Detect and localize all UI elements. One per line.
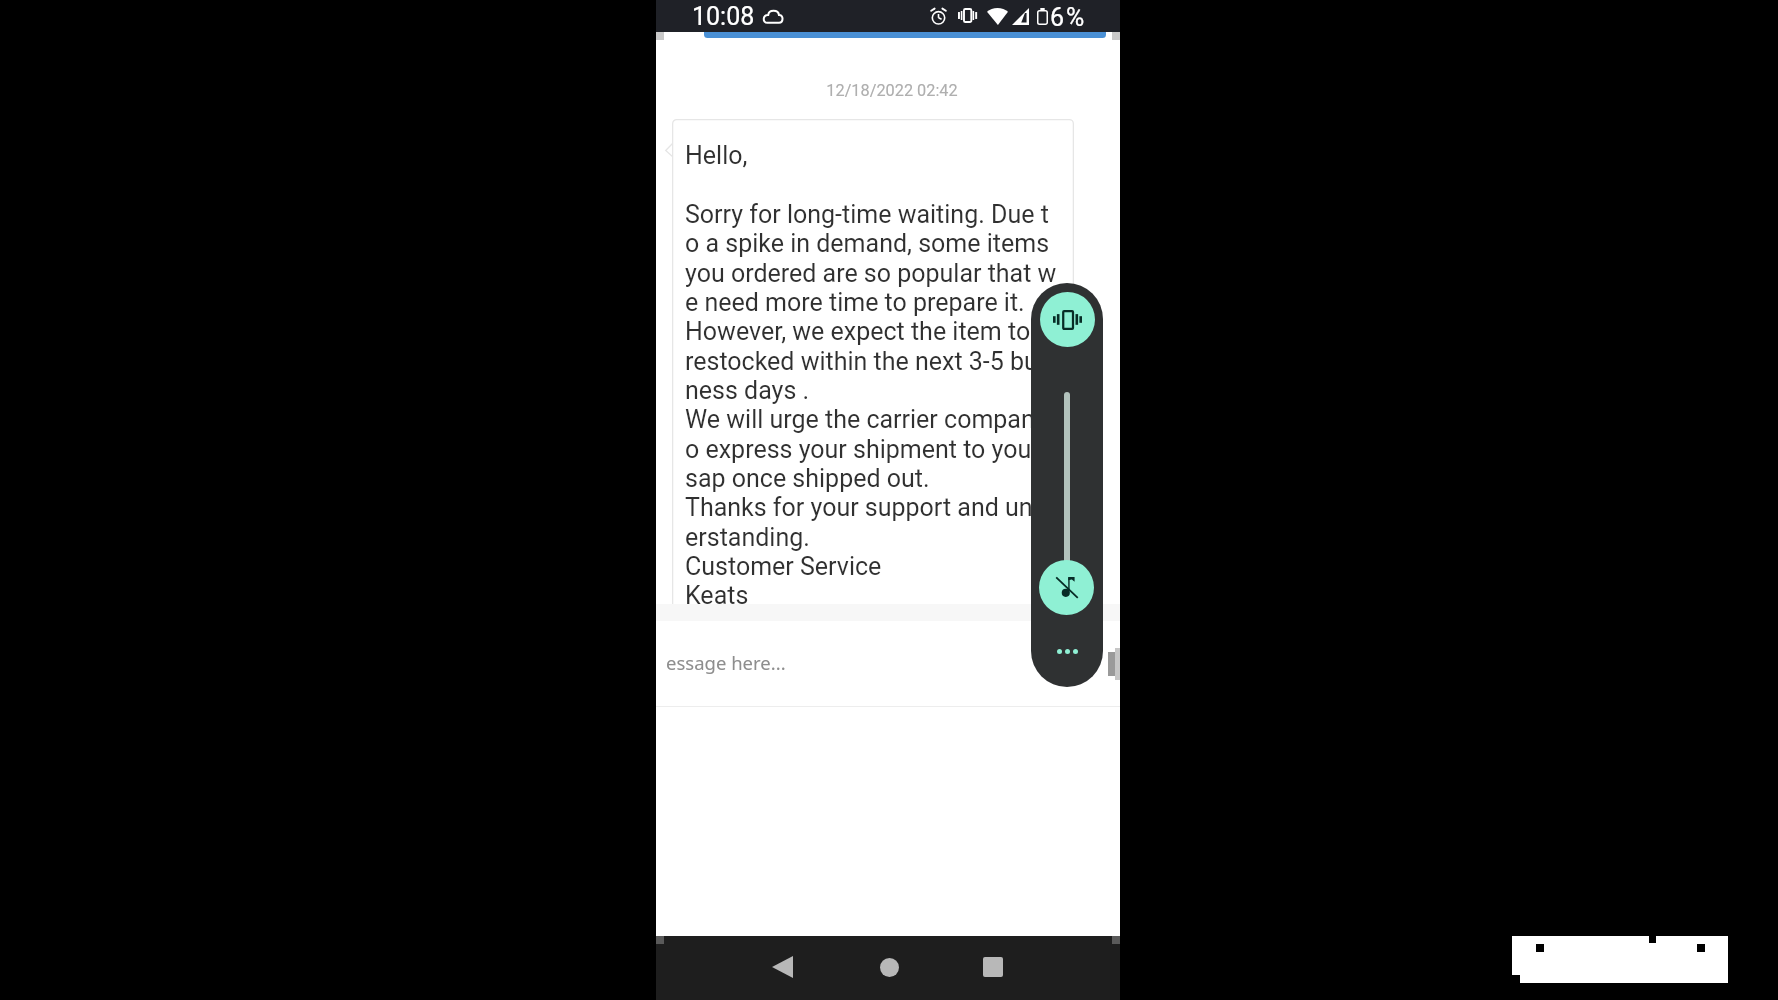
button[interactable]: Media volume muted xyxy=(1039,560,1094,615)
staticText: o a spike in demand, some items xyxy=(685,229,1056,258)
staticText: Hello, xyxy=(685,141,748,170)
staticText: sap once shipped out. xyxy=(685,464,930,493)
staticText: essage here... xyxy=(666,650,786,675)
staticText: ness days . xyxy=(685,376,810,405)
staticText: e need more time to prepare it. xyxy=(685,288,1031,317)
button[interactable]: essage here... xyxy=(656,620,1120,707)
button[interactable]: Back xyxy=(758,943,806,991)
staticText: Keats xyxy=(685,581,749,605)
staticText: Customer Service xyxy=(685,552,882,581)
button[interactable]: Home xyxy=(865,943,913,991)
staticText: However, we expect the item to be xyxy=(685,317,1070,346)
staticText: 6% xyxy=(1050,3,1087,32)
button[interactable]: More volume settings xyxy=(1049,633,1085,669)
staticText: 10:08 xyxy=(692,2,755,31)
button[interactable]: Recent apps xyxy=(969,943,1017,991)
staticText: you ordered are so popular that w xyxy=(685,259,1057,288)
button[interactable]: Ringer mode, vibrate xyxy=(1040,292,1095,347)
staticText: 12/18/2022 02:42 xyxy=(660,81,1120,100)
staticText: Thanks for your support and und xyxy=(685,493,1047,522)
staticText: Sorry for long-time waiting. Due t xyxy=(685,200,1049,229)
staticText: We will urge the carrier company t xyxy=(685,405,1061,434)
staticText: restocked within the next 3-5 busi xyxy=(685,347,1057,376)
staticText: o express your shipment to you a xyxy=(685,435,1052,464)
staticText: erstanding. xyxy=(685,523,810,552)
